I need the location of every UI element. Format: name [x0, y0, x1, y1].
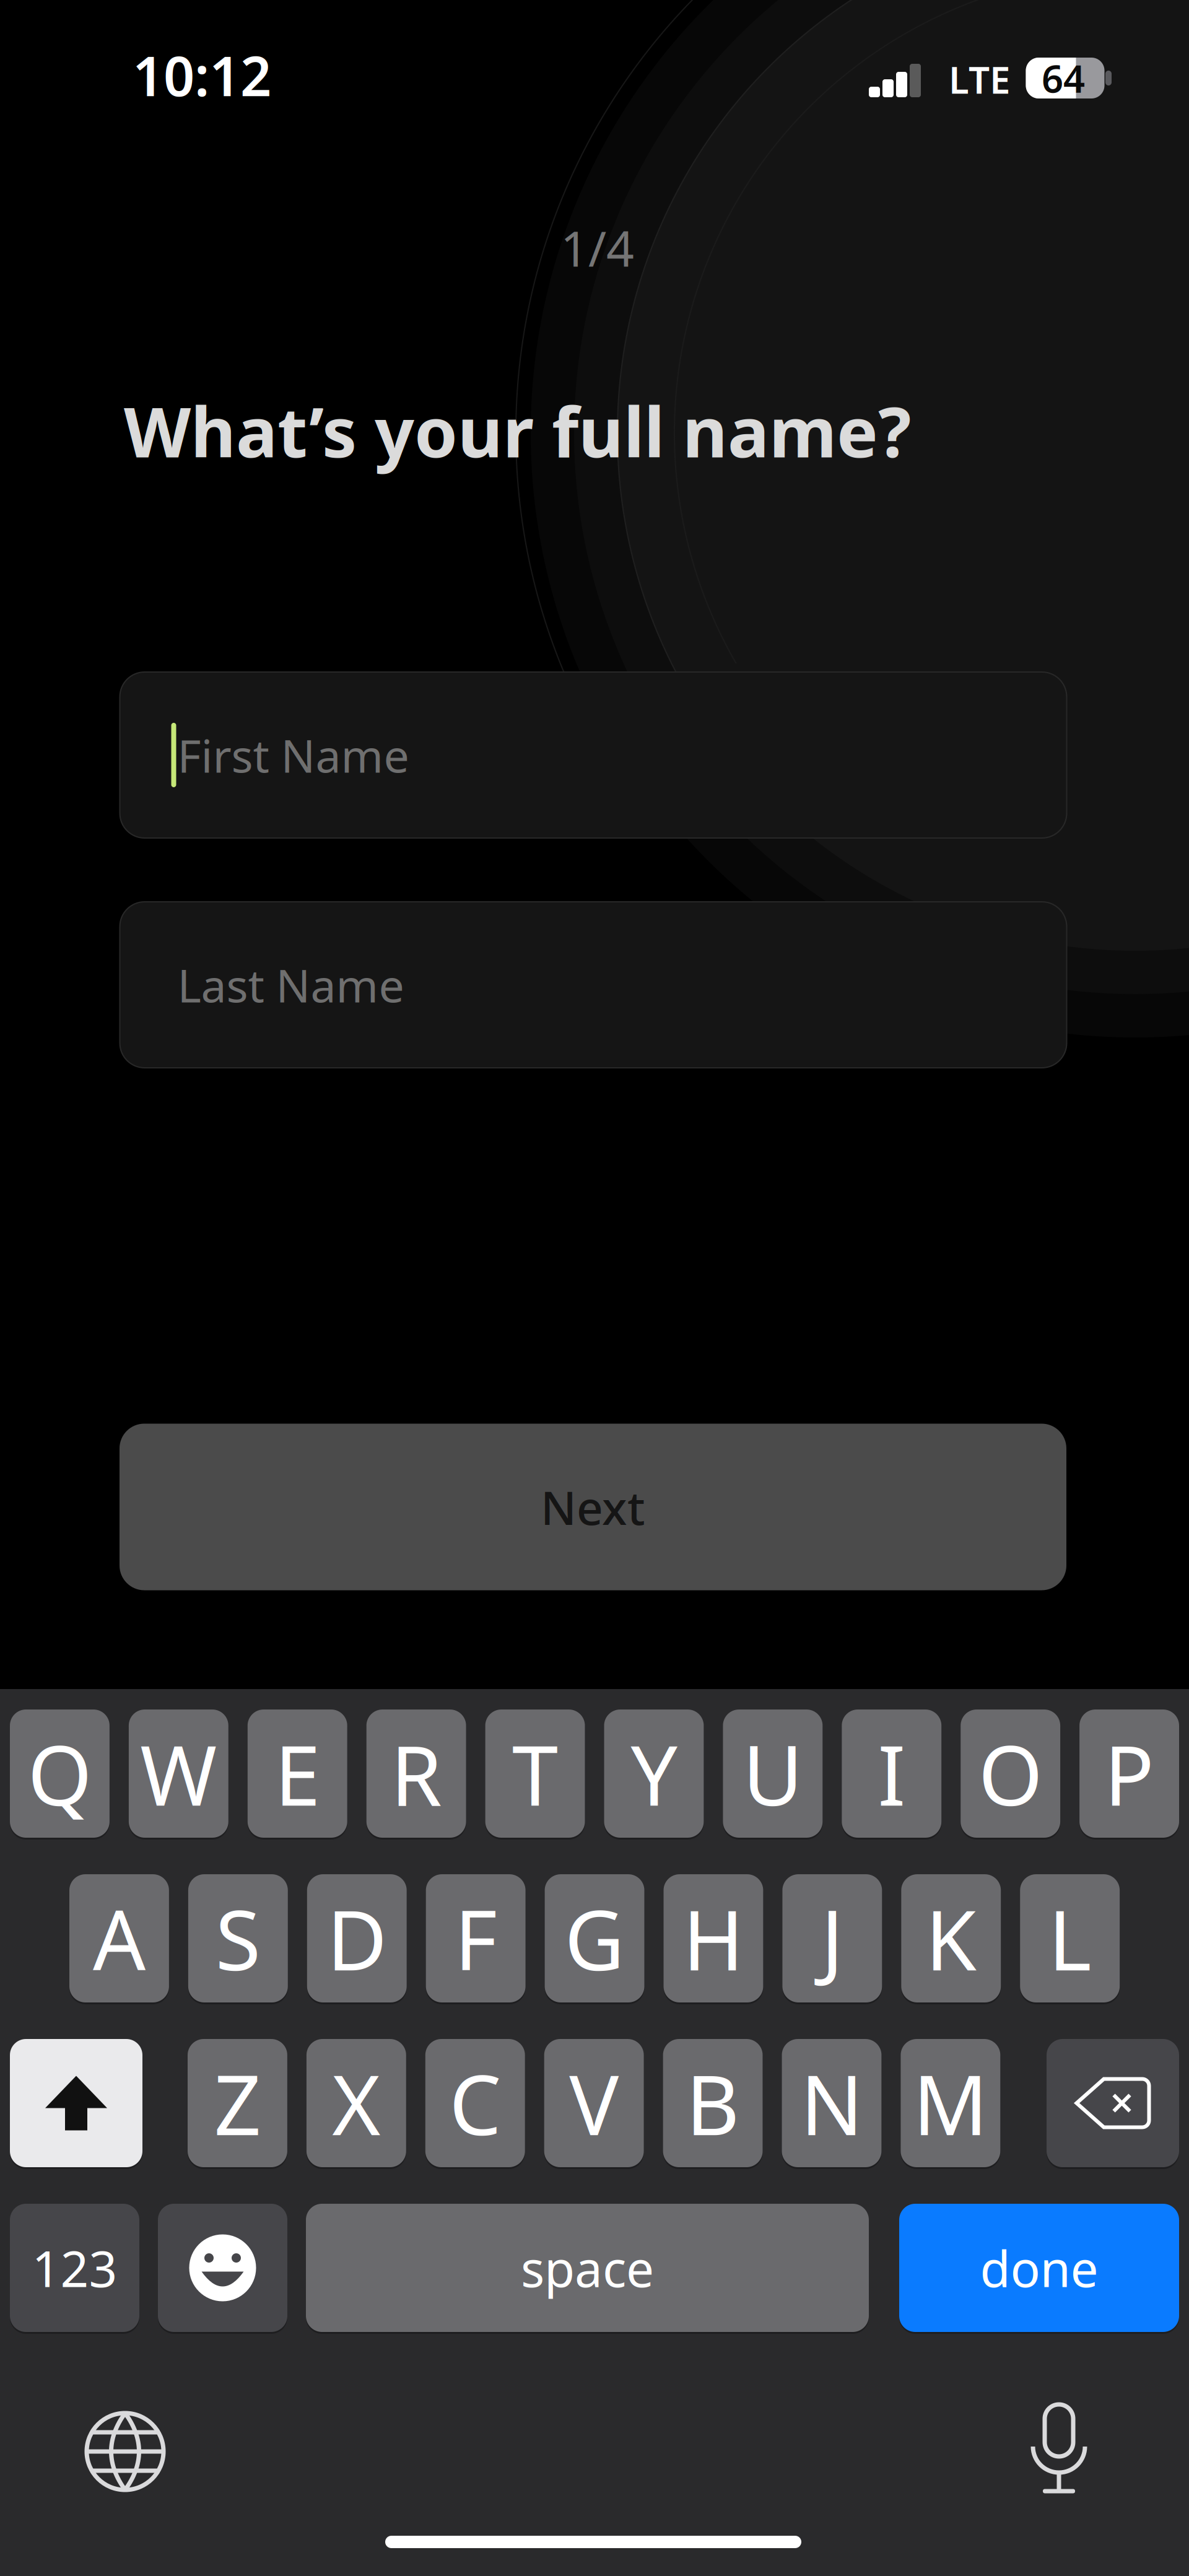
button[interactable]: E — [248, 1709, 347, 1838]
staticText: P — [1104, 1719, 1154, 1828]
staticText: W — [140, 1719, 217, 1828]
button[interactable]: B — [663, 2039, 763, 2167]
button[interactable]: Z — [188, 2039, 287, 2167]
button[interactable]: J — [782, 1874, 882, 2002]
staticText: G — [565, 1884, 625, 1993]
button[interactable]: Q — [10, 1709, 110, 1838]
button[interactable]: space — [306, 2204, 869, 2332]
staticText: N — [800, 2048, 863, 2158]
button[interactable]: D — [307, 1874, 407, 2002]
staticText: S — [215, 1884, 261, 1993]
staticText: L — [1048, 1884, 1092, 1993]
staticText: done — [980, 2235, 1098, 2301]
button[interactable]: V — [544, 2039, 644, 2167]
staticText: What’s your full name? — [124, 384, 911, 476]
staticText: 10:12 — [133, 39, 271, 111]
staticText: Z — [214, 2048, 261, 2158]
staticText: C — [449, 2048, 501, 2158]
button[interactable]: Next — [120, 1424, 1066, 1590]
staticText: B — [686, 2048, 740, 2158]
staticText: space — [521, 2235, 654, 2301]
button[interactable]: F — [426, 1874, 526, 2002]
button[interactable]: A — [69, 1874, 169, 2002]
staticText: A — [93, 1884, 145, 1993]
staticText: 123 — [32, 2235, 117, 2301]
button[interactable]: 123 — [10, 2204, 139, 2332]
staticText: V — [569, 2048, 619, 2158]
button[interactable]: X — [306, 2039, 406, 2167]
button[interactable]: Emoji — [158, 2204, 287, 2332]
staticText: R — [391, 1719, 442, 1828]
button[interactable]: O — [961, 1709, 1060, 1838]
button[interactable]: First Name — [120, 672, 1067, 838]
staticText: T — [512, 1719, 558, 1828]
staticText: Y — [631, 1719, 677, 1828]
button[interactable]: L — [1020, 1874, 1120, 2002]
button[interactable]: Next keyboard — [87, 2413, 163, 2490]
staticText: O — [978, 1719, 1043, 1828]
staticText: K — [925, 1884, 977, 1993]
button[interactable]: R — [366, 1709, 466, 1838]
staticText: Next — [541, 1476, 645, 1538]
staticText: LTE — [949, 55, 1010, 104]
staticText: 1/4 — [560, 215, 634, 280]
button[interactable]: Y — [604, 1709, 704, 1838]
staticText: E — [274, 1719, 320, 1828]
staticText: J — [821, 1884, 843, 1993]
button[interactable]: M — [901, 2039, 1000, 2167]
button[interactable]: T — [485, 1709, 585, 1838]
button[interactable]: I — [842, 1709, 941, 1838]
button[interactable]: K — [901, 1874, 1001, 2002]
staticText: F — [454, 1884, 497, 1993]
button[interactable]: done — [899, 2204, 1179, 2332]
button[interactable]: Last Name — [120, 902, 1067, 1068]
button[interactable]: Delete — [1047, 2039, 1179, 2167]
button[interactable]: Dictate — [1019, 2408, 1099, 2495]
staticText: Last Name — [177, 955, 404, 1015]
button[interactable]: N — [782, 2039, 881, 2167]
staticText: M — [913, 2048, 988, 2158]
staticText: Q — [28, 1719, 92, 1828]
button[interactable]: C — [425, 2039, 525, 2167]
staticText: X — [332, 2048, 380, 2158]
button[interactable]: S — [188, 1874, 288, 2002]
staticText: D — [327, 1884, 387, 1993]
staticText: 64 — [1042, 53, 1085, 103]
button[interactable]: W — [129, 1709, 228, 1838]
button[interactable]: Shift — [10, 2039, 142, 2167]
staticText: I — [878, 1719, 905, 1828]
button[interactable]: H — [664, 1874, 763, 2002]
staticText: H — [683, 1884, 744, 1993]
staticText: U — [743, 1719, 803, 1828]
staticText: First Name — [177, 725, 409, 785]
button[interactable]: P — [1079, 1709, 1179, 1838]
button[interactable]: G — [545, 1874, 644, 2002]
button[interactable]: U — [723, 1709, 823, 1838]
